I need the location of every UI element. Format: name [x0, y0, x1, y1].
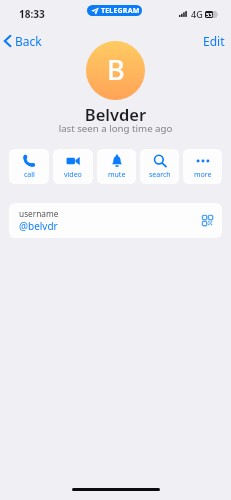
staticText: @belvdr: [19, 219, 58, 233]
button[interactable]: username: [9, 203, 222, 238]
staticText: Back: [15, 33, 42, 49]
button[interactable]: more: [183, 149, 222, 184]
staticText: Edit: [203, 33, 225, 49]
button[interactable]: QR code: [200, 214, 213, 227]
staticText: search: [149, 170, 171, 180]
staticText: more: [194, 170, 212, 180]
staticText: 53: [206, 11, 213, 18]
button[interactable]: Edit: [195, 29, 231, 53]
staticText: B: [107, 51, 125, 88]
button[interactable]: call: [9, 149, 49, 184]
staticText: 4G: [191, 8, 203, 20]
button[interactable]: Telegram live activity: [87, 5, 142, 16]
staticText: 18:33: [19, 7, 45, 21]
staticText: mute: [108, 170, 126, 180]
staticText: TELEGRAM: [101, 6, 140, 16]
button[interactable]: Back: [0, 29, 50, 53]
button[interactable]: mute: [97, 149, 136, 184]
button[interactable]: search: [140, 149, 179, 184]
staticText: last seen a long time ago: [0, 122, 231, 135]
staticText: username: [19, 208, 59, 219]
button[interactable]: video: [53, 149, 93, 184]
staticText: video: [64, 170, 82, 180]
staticText: Belvder: [0, 103, 231, 125]
staticText: call: [24, 170, 35, 180]
